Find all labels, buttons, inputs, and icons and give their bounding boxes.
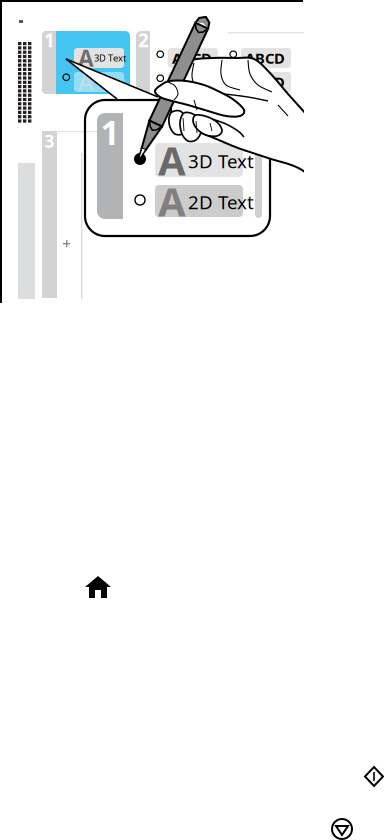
staticText: 1 xyxy=(100,110,119,154)
staticText: A xyxy=(78,67,94,97)
staticText: 2 xyxy=(138,28,149,52)
staticText: 2D Text xyxy=(94,76,126,88)
staticText: 2D Text xyxy=(188,190,254,214)
staticText: 3D Text xyxy=(94,52,126,64)
staticText: A xyxy=(158,133,186,186)
staticText: 3D Text xyxy=(188,149,254,173)
staticText: ABCD xyxy=(245,72,285,92)
staticText: 3 xyxy=(44,129,54,152)
staticText: 1 xyxy=(44,28,55,52)
staticText: ABCD xyxy=(245,48,285,68)
staticText: A xyxy=(78,43,94,73)
staticText: A xyxy=(158,174,186,227)
staticText: ABCD xyxy=(172,48,212,68)
staticText: ABCD xyxy=(172,72,212,92)
